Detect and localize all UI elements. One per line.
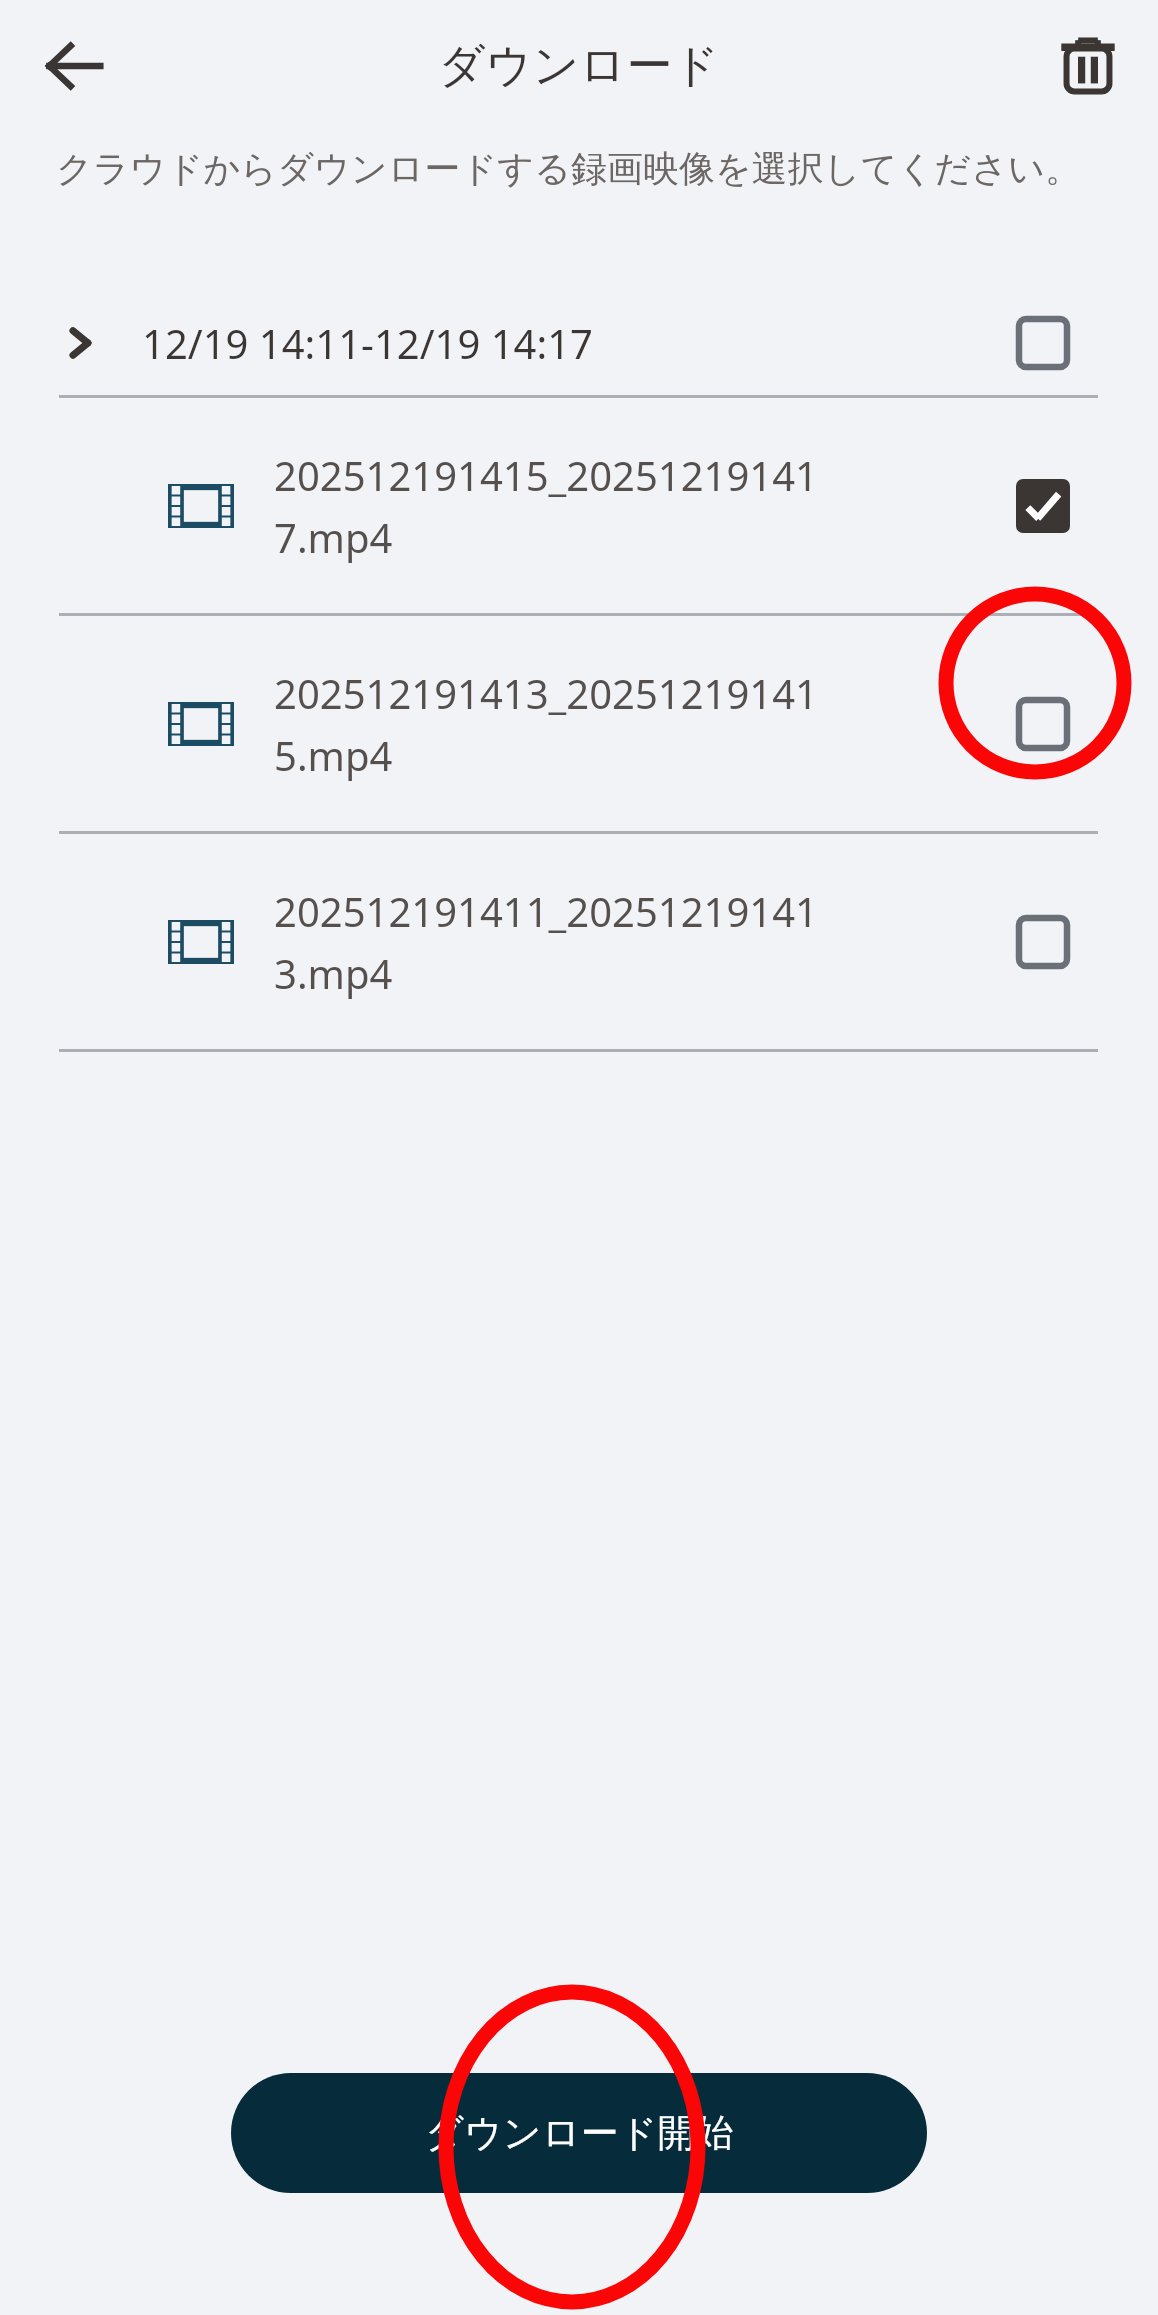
button[interactable]: Not selected: [1000, 899, 1086, 985]
button[interactable]: 12/19 14:11-12/19 14:17: [0, 291, 1158, 395]
staticText: 202512191413_202512191415.mp4: [274, 666, 834, 782]
staticText: クラウドからダウンロードする録画映像を選択してください。: [56, 146, 1081, 191]
staticText: ダウンロード: [438, 37, 720, 95]
staticText: 202512191415_202512191417.mp4: [274, 448, 834, 564]
button[interactable]: Selected: [1000, 463, 1086, 549]
button[interactable]: Not selected: [1000, 681, 1086, 767]
button[interactable]: 202512191411_202512191413.mp4: [0, 834, 1158, 1049]
button[interactable]: Back: [30, 22, 118, 110]
button[interactable]: ダウンロード開始: [231, 2073, 927, 2193]
staticText: ダウンロード開始: [425, 2109, 734, 2157]
staticText: 202512191411_202512191413.mp4: [274, 884, 834, 1000]
button[interactable]: Delete: [1044, 22, 1132, 110]
staticText: 12/19 14:11-12/19 14:17: [142, 316, 593, 370]
button[interactable]: Not selected: [1000, 300, 1086, 386]
button[interactable]: 202512191413_202512191415.mp4: [0, 616, 1158, 831]
button[interactable]: 202512191415_202512191417.mp4: [0, 398, 1158, 613]
